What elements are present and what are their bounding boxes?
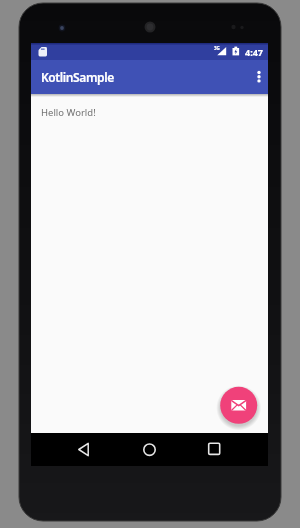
button[interactable] xyxy=(216,382,261,427)
button[interactable] xyxy=(134,434,164,464)
staticText: 4:47 xyxy=(245,46,263,58)
staticText: 3G xyxy=(214,45,220,51)
staticText: Hello World! xyxy=(41,106,96,119)
button[interactable] xyxy=(199,434,229,464)
button[interactable] xyxy=(68,434,98,464)
staticText: KotlinSample xyxy=(41,69,114,85)
button[interactable] xyxy=(244,65,268,89)
